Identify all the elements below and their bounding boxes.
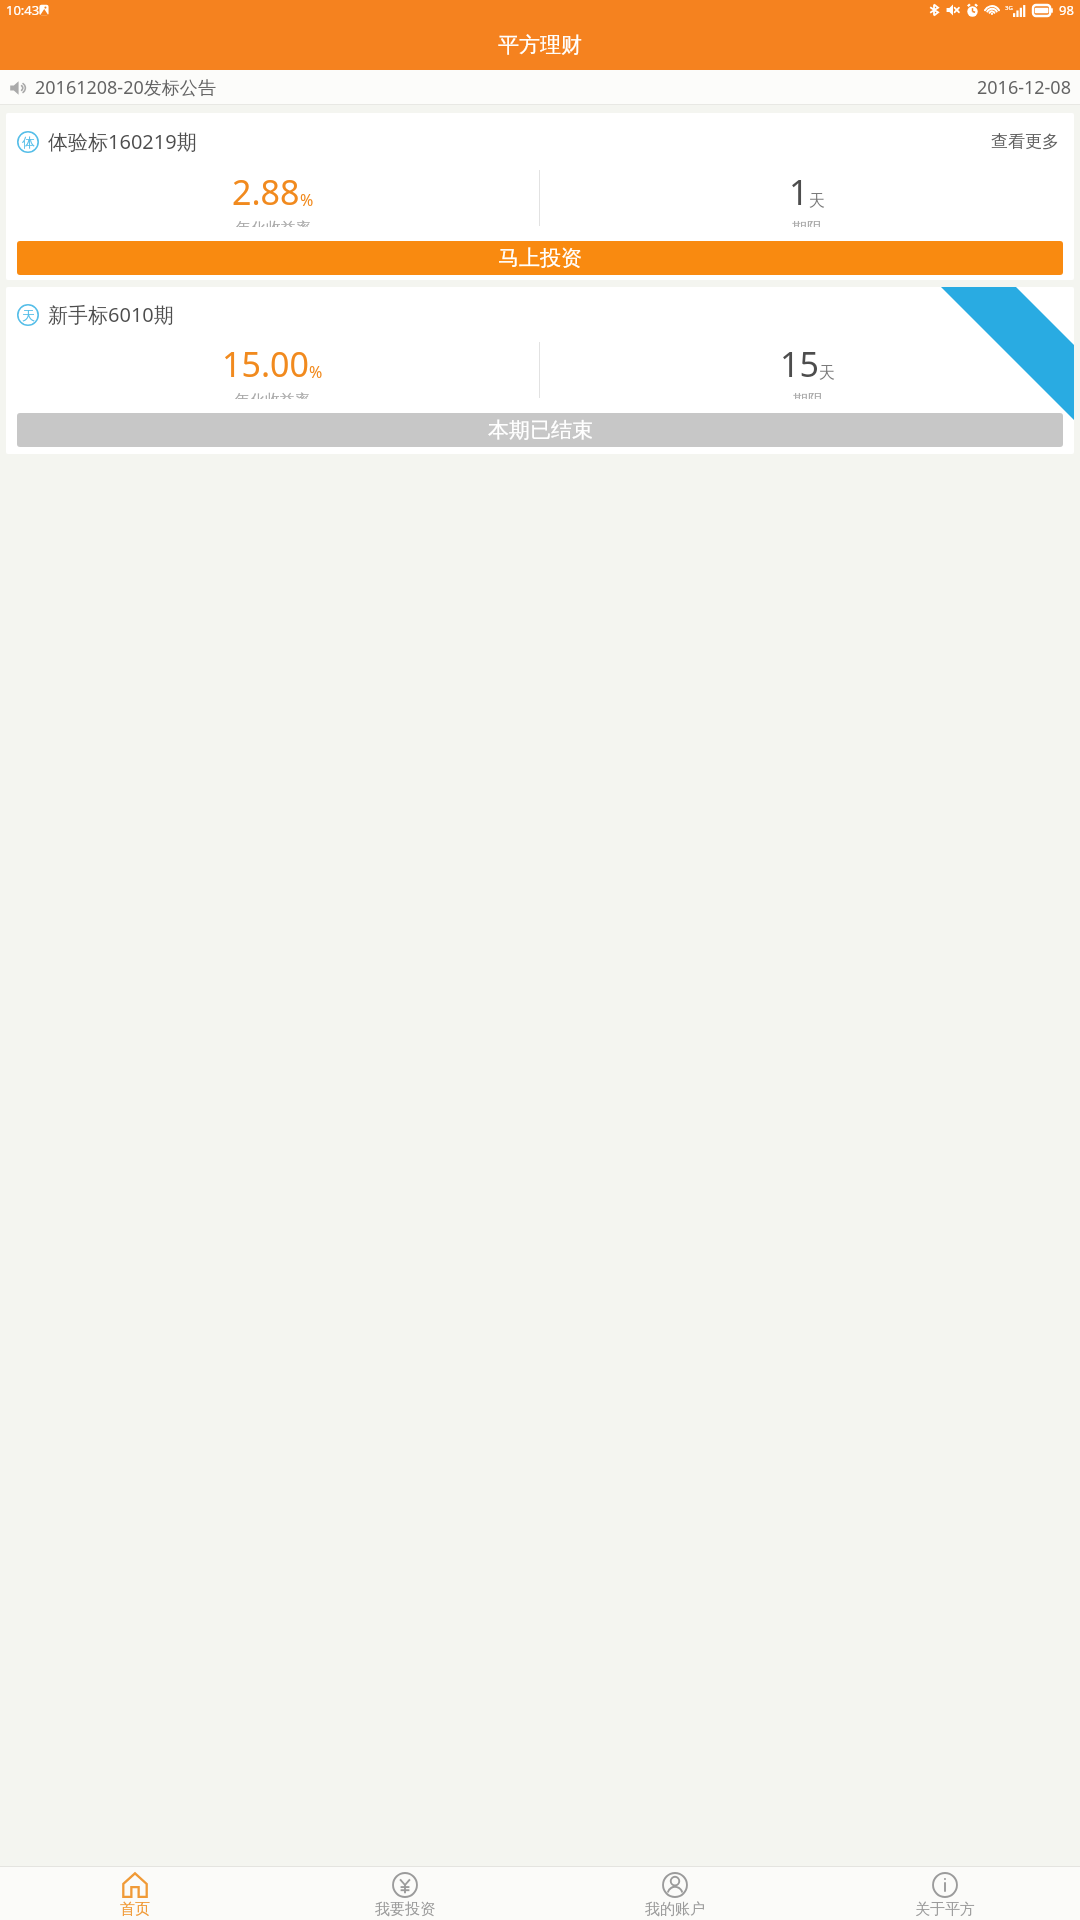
- staticText: 首页: [120, 1900, 150, 1919]
- staticText: 期限: [792, 219, 822, 227]
- staticText: 2.88: [232, 169, 300, 215]
- button[interactable]: 本期已结束: [17, 413, 1063, 447]
- staticText: 体: [22, 134, 35, 150]
- staticText: 马上投资: [498, 245, 582, 271]
- staticText: 本期已结束: [488, 417, 593, 443]
- staticText: 天: [819, 363, 835, 383]
- staticText: 2016-12-08: [977, 75, 1071, 100]
- staticText: 期限: [793, 391, 823, 399]
- staticText: 天: [22, 307, 35, 323]
- button[interactable]: 我的账户: [540, 1867, 810, 1920]
- staticText: 15.00: [222, 341, 309, 387]
- button[interactable]: 关于平方: [810, 1867, 1080, 1920]
- staticText: 体验标160219期: [48, 128, 197, 155]
- staticText: 20161208-20发标公告: [35, 75, 216, 100]
- button[interactable]: 公告: [0, 70, 1080, 105]
- button[interactable]: 首页: [0, 1867, 270, 1920]
- staticText: 10:43: [6, 1, 40, 19]
- staticText: 新手标6010期: [48, 301, 174, 328]
- button[interactable]: 我要投资: [270, 1867, 540, 1920]
- staticText: 3G: [1005, 4, 1013, 12]
- button[interactable]: 体: [6, 113, 1074, 280]
- staticText: 新手: [1038, 287, 1072, 322]
- staticText: 我要投资: [375, 1900, 435, 1919]
- staticText: 关于平方: [915, 1900, 975, 1919]
- button[interactable]: 查看更多: [987, 127, 1063, 156]
- other: 公告: [9, 78, 29, 98]
- staticText: 15: [780, 341, 819, 387]
- staticText: 年化收益率: [235, 391, 310, 399]
- staticText: 查看更多: [991, 131, 1059, 152]
- staticText: %: [300, 189, 314, 211]
- staticText: %: [309, 361, 323, 383]
- button[interactable]: 新手: [6, 287, 1074, 454]
- staticText: 天: [809, 191, 825, 211]
- staticText: 年化收益率: [236, 219, 311, 227]
- staticText: 平方理财: [498, 32, 582, 58]
- staticText: 98: [1059, 1, 1074, 19]
- button[interactable]: 马上投资: [17, 241, 1063, 275]
- staticText: 1: [789, 169, 809, 215]
- staticText: 我的账户: [645, 1900, 705, 1919]
